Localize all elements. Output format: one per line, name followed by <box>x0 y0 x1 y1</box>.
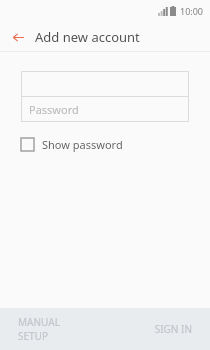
staticText: Add new account <box>35 28 140 46</box>
button[interactable]: Show password <box>21 137 123 152</box>
staticText: SIGN IN <box>154 322 192 336</box>
staticText: 10:00 <box>180 5 204 17</box>
button[interactable]: SIGN IN <box>150 319 196 339</box>
staticText: Show password <box>42 137 123 152</box>
staticText: MANUAL <box>18 315 60 329</box>
staticText: Password <box>29 102 79 117</box>
button[interactable]: MANUAL <box>14 312 64 346</box>
button[interactable]: Navigate up <box>7 26 29 48</box>
staticText: SETUP <box>18 329 48 343</box>
button[interactable]: Password <box>21 97 189 122</box>
button[interactable] <box>21 71 189 96</box>
